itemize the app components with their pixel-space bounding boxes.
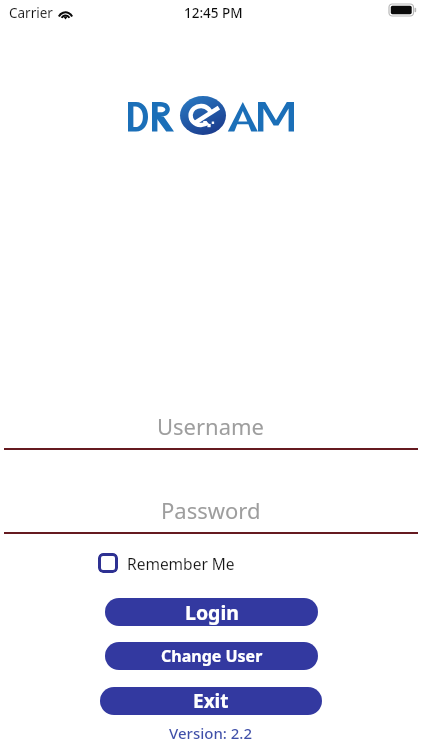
button[interactable]: Username	[4, 404, 418, 446]
button[interactable]: Exit	[100, 687, 322, 715]
staticText: 12:45 PM	[184, 4, 243, 22]
staticText: Login	[185, 599, 239, 626]
staticText: Change User	[161, 645, 263, 667]
button[interactable]: Password	[4, 488, 418, 530]
staticText: Version: 2.2	[169, 723, 253, 743]
staticText: Username	[157, 411, 265, 441]
button[interactable]: Login	[105, 598, 318, 626]
button[interactable]: Change User	[105, 642, 318, 670]
staticText: Password	[161, 495, 261, 525]
staticText: Carrier	[9, 4, 53, 22]
other: DREAM logo	[128, 98, 300, 138]
staticText: Remember Me	[127, 553, 235, 574]
button[interactable]: Remember Me	[96, 550, 237, 576]
staticText: Exit	[193, 688, 229, 714]
